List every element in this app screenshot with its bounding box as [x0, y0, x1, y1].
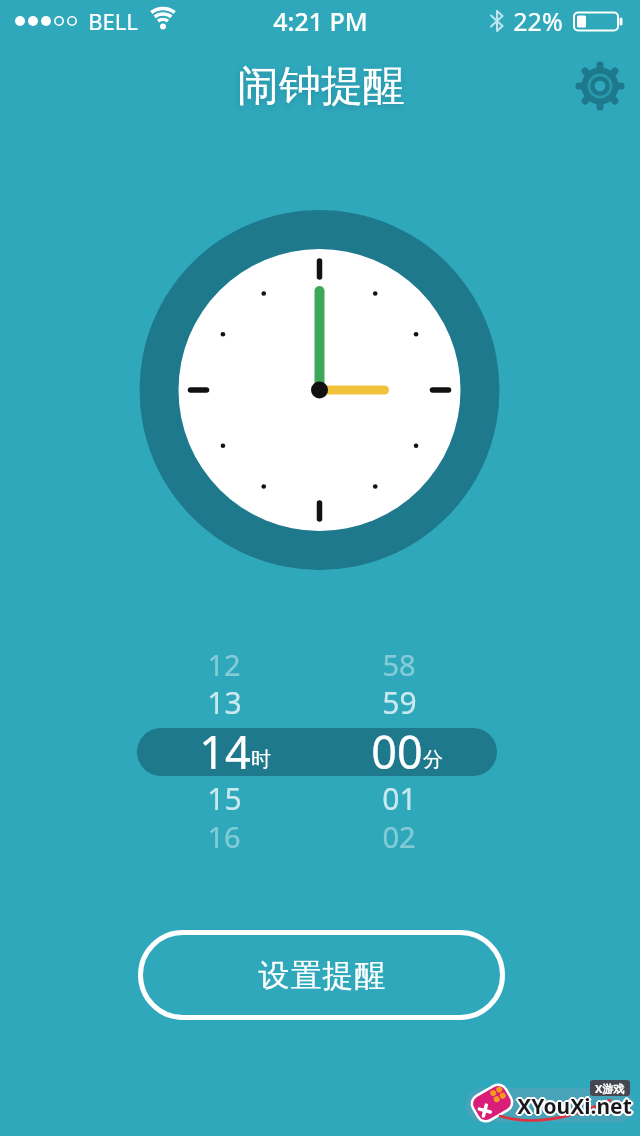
button[interactable]	[137, 728, 497, 776]
staticText: 4:21 PM	[273, 4, 368, 38]
staticText: 58	[382, 645, 416, 684]
staticText: XYouXi.net	[517, 1094, 632, 1123]
staticText: 59	[382, 682, 417, 723]
staticText: BELL	[88, 6, 138, 36]
staticText: 设置提醒	[258, 956, 386, 995]
staticText: 16	[207, 817, 241, 856]
staticText: 分	[423, 747, 443, 772]
staticText: XYouXi.net	[516, 1091, 631, 1120]
button[interactable]	[572, 58, 628, 114]
staticText: XYouXi.net	[515, 1092, 630, 1121]
staticText: 闹钟提醒	[237, 60, 405, 113]
staticText: X游戏	[595, 1081, 625, 1096]
staticText: XYouXi.net	[517, 1092, 632, 1121]
staticText: 22%	[513, 4, 563, 38]
staticText: 02	[382, 817, 416, 856]
staticText: 12	[207, 645, 241, 684]
staticText: XYouXi.net	[518, 1093, 633, 1122]
staticText: XYouXi.net	[516, 1093, 631, 1122]
staticText: XYouXi.net	[518, 1091, 633, 1120]
staticText: 13	[207, 682, 242, 723]
staticText: 00	[371, 721, 423, 782]
staticText: 时	[251, 747, 271, 772]
staticText: 01	[382, 778, 417, 819]
staticText: XYouXi.net	[517, 1090, 632, 1119]
staticText: XYouXi.net	[519, 1092, 634, 1121]
staticText: 15	[207, 778, 242, 819]
staticText: 14	[199, 721, 251, 782]
button[interactable]: 设置提醒	[138, 930, 505, 1020]
